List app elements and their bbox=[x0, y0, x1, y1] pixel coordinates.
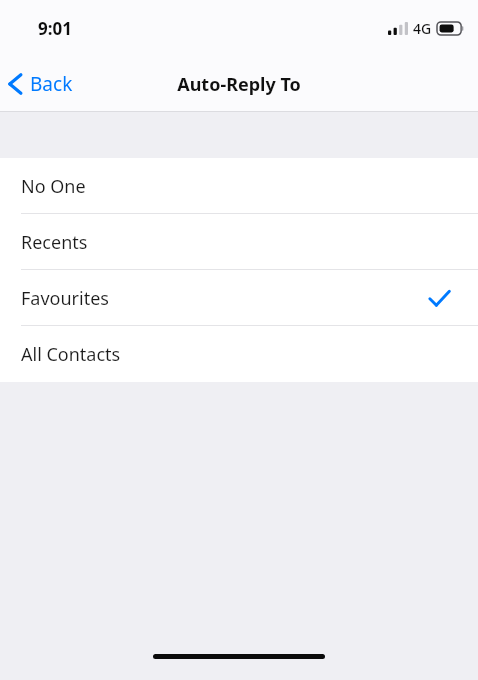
button[interactable]: Recents bbox=[0, 214, 478, 270]
button[interactable]: All Contacts bbox=[0, 326, 478, 382]
button[interactable]: No One bbox=[0, 158, 478, 214]
staticText: Auto-Reply To bbox=[177, 72, 301, 97]
staticText: 9:01 bbox=[38, 17, 72, 40]
staticText: All Contacts bbox=[21, 342, 121, 367]
staticText: Back bbox=[30, 71, 73, 97]
staticText: 4G bbox=[413, 19, 432, 38]
staticText: No One bbox=[21, 174, 86, 199]
staticText: Favourites bbox=[21, 286, 109, 311]
button[interactable]: Back bbox=[0, 65, 85, 103]
staticText: Recents bbox=[21, 230, 88, 255]
button[interactable]: Favourites bbox=[0, 270, 478, 326]
